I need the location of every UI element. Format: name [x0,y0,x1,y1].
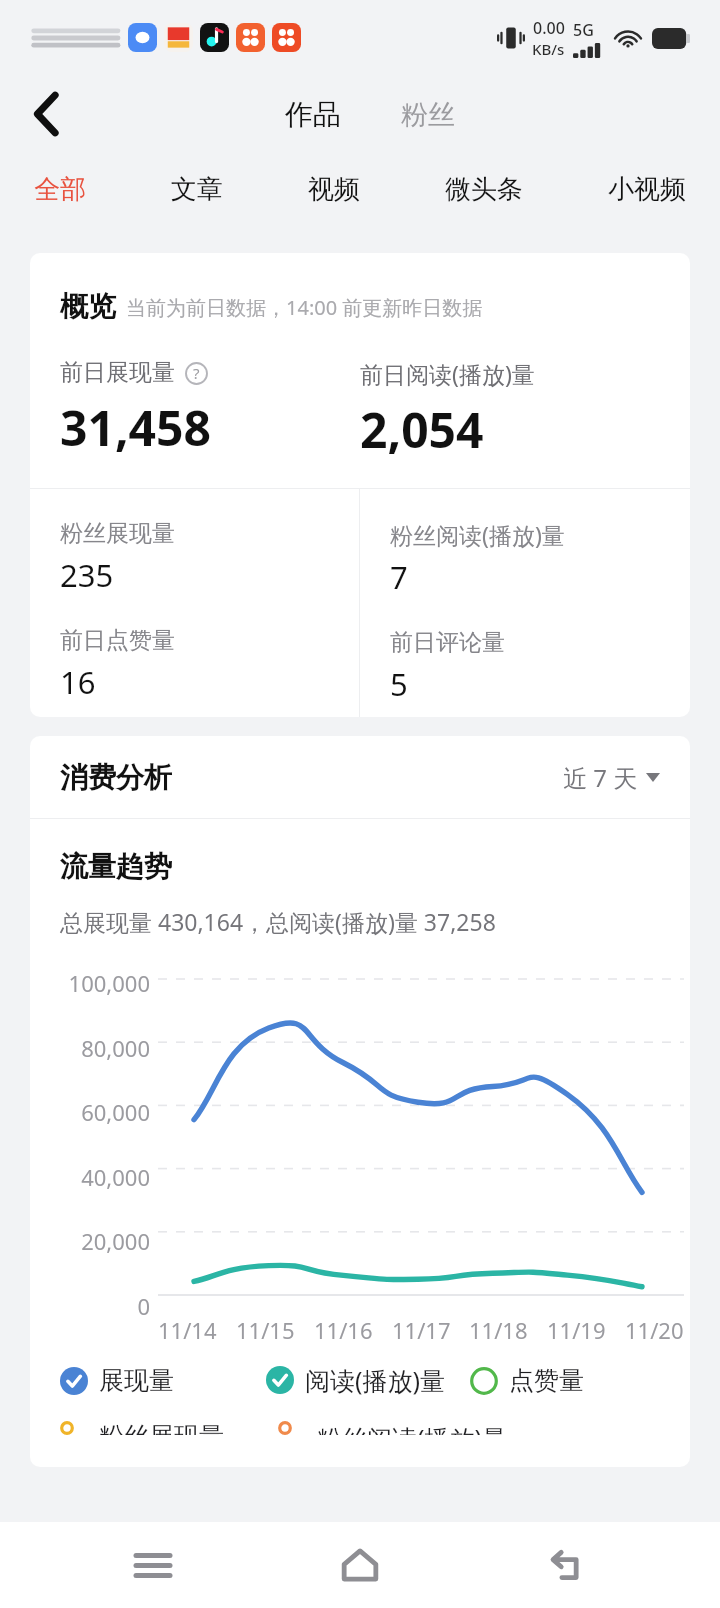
staticText: 5 [390,663,408,705]
staticText: 31,458 [60,395,211,460]
button[interactable]: 阅读(播放)量 [266,1361,446,1399]
staticText: 粉丝展现量 [99,1421,224,1435]
staticText: 总展现量 430,164，总阅读(播放)量 37,258 [60,906,496,937]
staticText: 0.00 [533,17,565,39]
staticText: 消费分析 [60,760,172,795]
staticText: 展现量 [99,1365,174,1396]
staticText: 20,000 [81,1226,150,1256]
staticText: 11/18 [469,1315,528,1345]
staticText: 粉丝 [401,98,455,132]
button[interactable]: 展现量 [60,1363,174,1398]
button[interactable]: 点赞量 [470,1363,584,1398]
staticText: 作品 [285,97,341,132]
staticText: 16 [60,661,96,703]
staticText: 235 [60,554,114,596]
staticText: 粉丝展现量 [60,519,175,548]
staticText: 微头条 [445,173,523,206]
button[interactable]: 小视频 [598,165,696,214]
button[interactable]: Recent apps [98,1522,208,1608]
staticText: 11/16 [314,1315,373,1345]
staticText: 11/20 [625,1315,684,1345]
staticText: ? [193,363,200,383]
button[interactable]: Back [513,1522,623,1608]
staticText: 概览 [60,289,116,324]
staticText: 2,054 [360,397,484,462]
staticText: 前日展现量 [60,358,175,387]
button[interactable]: 全部 [24,165,96,214]
staticText: 阅读(播放)量 [305,1363,446,1397]
button[interactable]: 微头条 [435,165,533,214]
staticText: 7 [390,556,408,598]
staticText: 小视频 [608,173,686,206]
button[interactable]: 粉丝阅读(播放)量 [278,1419,508,1437]
button[interactable]: 粉丝 [391,92,465,138]
staticText: 文章 [171,173,223,206]
staticText: 当前为前日数据，14:00 前更新昨日数据 [126,294,483,321]
button[interactable]: Help [183,360,209,386]
staticText: 粉丝阅读(播放)量 [390,519,565,550]
staticText: 前日阅读(播放)量 [360,358,535,389]
staticText: 0 [137,1291,150,1321]
button[interactable]: 视频 [298,165,370,214]
staticText: 点赞量 [509,1365,584,1396]
staticText: 前日点赞量 [60,626,175,655]
staticText: 11/14 [158,1315,217,1345]
staticText: 100,000 [68,968,150,998]
button[interactable]: 文章 [161,165,233,214]
staticText: 近 7 天 [563,761,638,794]
staticText: 5G [573,19,594,41]
staticText: 视频 [308,173,360,206]
staticText: 40,000 [81,1162,150,1192]
staticText: 前日评论量 [390,628,505,657]
staticText: 11/15 [236,1315,295,1345]
button[interactable]: 粉丝展现量 [60,1419,224,1437]
button[interactable]: 作品 [275,91,351,138]
button[interactable]: Back [18,85,76,143]
staticText: KB/s [532,39,565,59]
staticText: 粉丝阅读(播放)量 [317,1421,508,1435]
staticText: 流量趋势 [60,849,172,884]
staticText: 11/17 [392,1315,451,1345]
staticText: 11/19 [547,1315,606,1345]
staticText: 全部 [34,173,86,206]
button[interactable]: 近 7 天 [563,755,660,800]
button[interactable]: Home [305,1522,415,1608]
staticText: 60,000 [81,1097,150,1127]
staticText: 80,000 [81,1033,150,1063]
